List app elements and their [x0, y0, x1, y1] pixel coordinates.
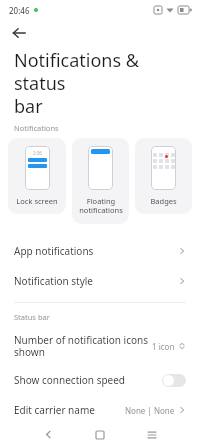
- staticText: Number of notification icons shown: [14, 333, 152, 359]
- button[interactable]: 2:36: [8, 138, 66, 214]
- staticText: Badges: [150, 196, 177, 206]
- button[interactable]: Recent apps: [135, 425, 169, 444]
- staticText: App notifications: [14, 244, 94, 258]
- button[interactable]: Notification style: [0, 266, 200, 296]
- button[interactable]: Badges: [135, 138, 192, 214]
- button[interactable]: Number of notification icons shown: [0, 327, 200, 365]
- button[interactable]: Back: [31, 425, 65, 444]
- button[interactable]: Floating notifications: [72, 138, 129, 224]
- button[interactable]: Show connection speed: [0, 365, 200, 395]
- staticText: Status bar: [14, 312, 50, 322]
- staticText: Show connection speed: [14, 373, 126, 387]
- button[interactable]: Back: [7, 21, 31, 45]
- staticText: 20:46: [9, 5, 30, 16]
- staticText: Notification style: [14, 274, 94, 288]
- staticText: Lock screen: [16, 196, 58, 206]
- button[interactable]: Home: [83, 425, 117, 444]
- staticText: 1 icon: [152, 341, 175, 352]
- button[interactable]: Edit carrier name: [0, 395, 200, 425]
- staticText: Notifications & status bar: [14, 48, 186, 118]
- button[interactable]: App notifications: [0, 236, 200, 266]
- staticText: 2:36: [33, 150, 42, 156]
- staticText: Floating notifications: [79, 196, 123, 216]
- staticText: None | None: [125, 405, 175, 416]
- staticText: Edit carrier name: [14, 403, 95, 417]
- staticText: Notifications: [14, 123, 59, 133]
